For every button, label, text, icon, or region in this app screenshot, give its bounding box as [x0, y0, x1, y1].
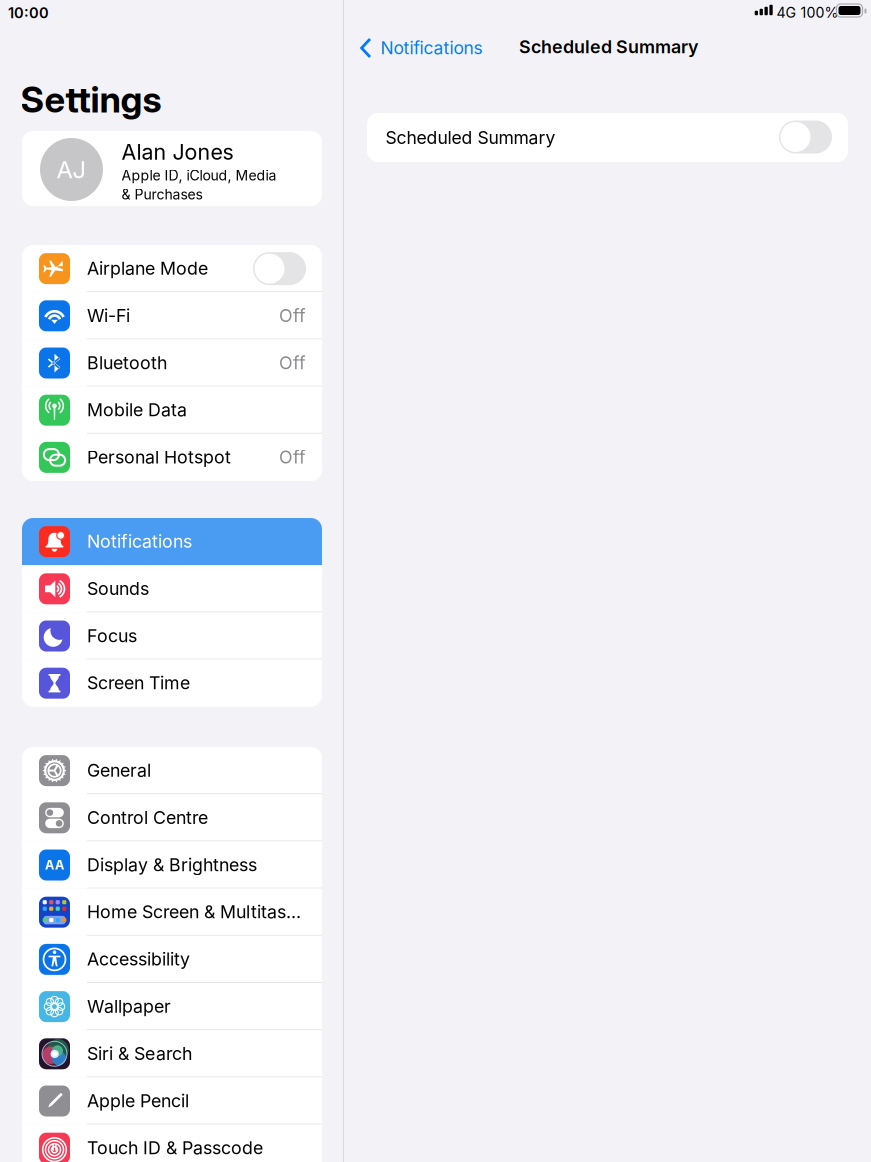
staticText: Apple Pencil [87, 1090, 189, 1111]
staticText: Settings [21, 77, 162, 121]
staticText: Apple ID, iCloud, Media [121, 167, 276, 184]
staticText: Home Screen & Multitas... [87, 901, 301, 923]
staticText: 10:00 [8, 4, 49, 22]
staticText: Bluetooth [87, 352, 167, 373]
staticText: Mobile Data [87, 399, 187, 421]
staticText: Off [279, 446, 306, 468]
staticText: Off [279, 305, 306, 326]
staticText: Alan Jones [121, 139, 233, 165]
button[interactable]: Home Screen & Multitas... [22, 889, 322, 936]
staticText: Airplane Mode [87, 258, 208, 279]
staticText: Notifications [87, 531, 192, 552]
staticText: Control Centre [87, 807, 208, 828]
staticText: Wi-Fi [87, 305, 130, 326]
button[interactable]: Wi-Fi [22, 292, 322, 339]
staticText: Sounds [87, 578, 149, 599]
button[interactable]: Focus [22, 612, 322, 660]
staticText: Siri & Search [87, 1043, 192, 1064]
button[interactable]: Wallpaper [22, 983, 322, 1030]
staticText: Focus [87, 625, 137, 646]
staticText: Personal Hotspot [87, 446, 231, 468]
button[interactable]: Control Centre [22, 794, 322, 841]
button[interactable]: Screen Time [22, 660, 322, 707]
staticText: Scheduled Summary [519, 36, 698, 58]
button[interactable]: Personal Hotspot [22, 434, 322, 481]
button[interactable]: Accessibility [22, 936, 322, 983]
button[interactable]: Apple Pencil [22, 1077, 322, 1125]
button[interactable]: Bluetooth [22, 339, 322, 387]
staticText: 4G 100% [776, 4, 838, 21]
button[interactable]: Siri & Search [22, 1030, 322, 1077]
button[interactable]: AJ [22, 131, 322, 206]
button[interactable]: General [22, 747, 322, 794]
staticText: Display & Brightness [87, 854, 257, 875]
staticText: Wallpaper [87, 996, 171, 1017]
button[interactable]: Notifications [355, 33, 486, 63]
button[interactable]: Touch ID & Passcode [22, 1125, 322, 1162]
button[interactable]: Airplane Mode [22, 245, 322, 292]
staticText: Off [279, 352, 306, 373]
staticText: & Purchases [121, 186, 202, 203]
staticText: Accessibility [87, 948, 190, 970]
staticText: Touch ID & Passcode [87, 1137, 263, 1159]
staticText: AJ [56, 155, 86, 184]
staticText: AA [45, 857, 64, 872]
button[interactable]: Scheduled Summary [367, 113, 848, 162]
button[interactable]: Sounds [22, 565, 322, 612]
staticText: Notifications [380, 37, 482, 59]
button[interactable]: AA [22, 841, 322, 889]
staticText: Screen Time [87, 672, 190, 694]
staticText: General [87, 760, 151, 781]
staticText: Scheduled Summary [385, 127, 555, 148]
button[interactable]: Mobile Data [22, 387, 322, 434]
button[interactable]: Notifications [22, 518, 322, 565]
